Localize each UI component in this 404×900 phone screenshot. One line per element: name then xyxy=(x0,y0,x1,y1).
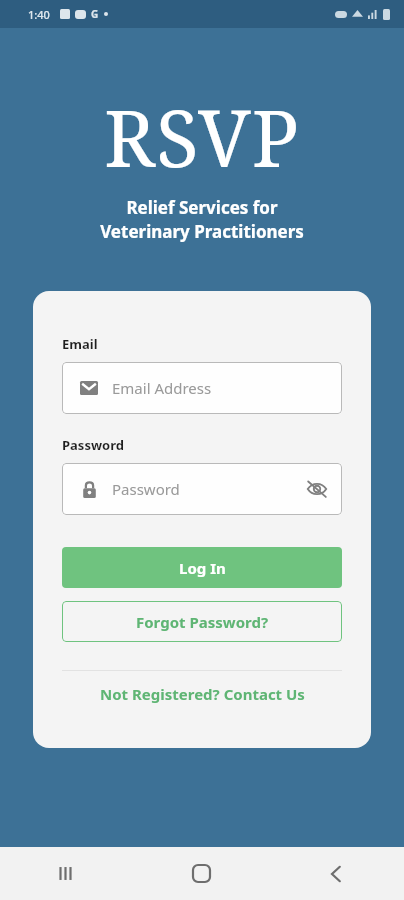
button[interactable]: Password xyxy=(62,463,342,515)
staticText: Password xyxy=(62,436,124,454)
button[interactable]: Log In xyxy=(62,547,342,588)
staticText: Log In xyxy=(179,558,226,578)
staticText: Forgot Password? xyxy=(136,612,269,632)
staticText: G xyxy=(91,7,99,21)
staticText: RSVP xyxy=(104,84,300,190)
button[interactable]: Home xyxy=(134,847,269,900)
staticText: Email Address xyxy=(112,378,212,398)
button[interactable]: Forgot Password? xyxy=(62,601,342,642)
button[interactable]: Back xyxy=(269,847,404,900)
staticText: Password xyxy=(112,479,180,499)
button[interactable]: Email Address xyxy=(62,362,342,414)
staticText: Relief Services for Veterinary Practitio… xyxy=(100,196,304,243)
button[interactable]: Recent apps xyxy=(0,847,134,900)
button[interactable]: Not Registered? Contact Us xyxy=(62,684,342,704)
staticText: Email xyxy=(62,335,98,353)
staticText: 1:40 xyxy=(28,7,50,22)
staticText: Not Registered? Contact Us xyxy=(100,684,305,704)
button[interactable]: Show password xyxy=(306,480,328,498)
